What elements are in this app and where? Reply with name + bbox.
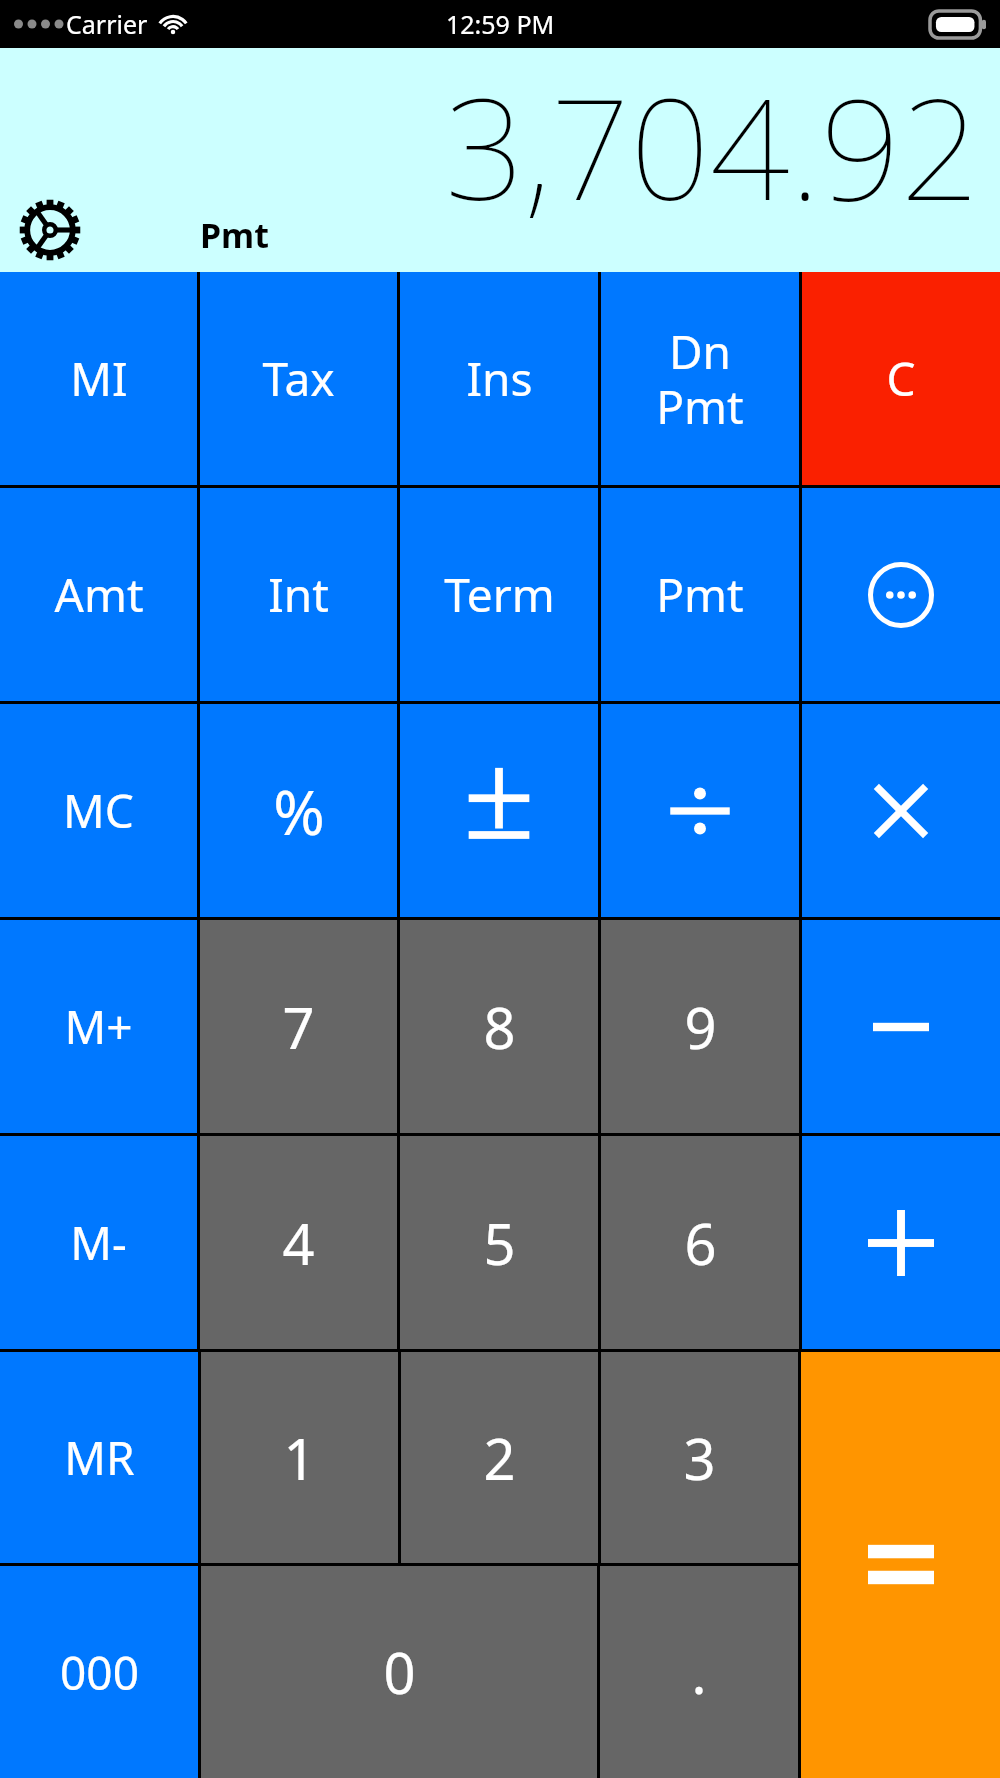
- button[interactable]: Divide: [601, 704, 799, 917]
- button[interactable]: Pmt: [601, 488, 799, 701]
- staticText: Tax: [262, 347, 335, 410]
- button[interactable]: 8: [400, 920, 598, 1133]
- staticText: Pmt: [656, 563, 744, 626]
- button[interactable]: Ins: [400, 272, 598, 485]
- button[interactable]: M-: [0, 1136, 197, 1349]
- button[interactable]: Int: [200, 488, 397, 701]
- staticText: 5: [483, 1205, 516, 1281]
- button[interactable]: C: [802, 272, 1000, 485]
- button[interactable]: 7: [200, 920, 397, 1133]
- button[interactable]: Term: [400, 488, 598, 701]
- staticText: 2: [483, 1420, 516, 1496]
- staticText: Carrier: [66, 7, 148, 41]
- staticText: Int: [268, 563, 329, 626]
- button[interactable]: More: [802, 488, 1000, 701]
- staticText: Dn Pmt: [656, 320, 744, 437]
- button[interactable]: Equals: [801, 1352, 1000, 1778]
- button[interactable]: Amt: [0, 488, 197, 701]
- button[interactable]: 1: [201, 1352, 398, 1563]
- button[interactable]: Plus: [802, 1136, 1000, 1349]
- staticText: 9: [684, 989, 717, 1065]
- staticText: C: [886, 347, 916, 410]
- button[interactable]: 2: [401, 1352, 598, 1563]
- staticText: MR: [64, 1426, 135, 1489]
- button[interactable]: Multiply: [802, 704, 1000, 917]
- staticText: %: [273, 769, 325, 853]
- button[interactable]: 9: [601, 920, 799, 1133]
- button[interactable]: Minus: [802, 920, 1000, 1133]
- button[interactable]: 6: [601, 1136, 799, 1349]
- button[interactable]: Tax: [200, 272, 397, 485]
- button[interactable]: %: [200, 704, 397, 917]
- staticText: .: [691, 1634, 707, 1710]
- staticText: 7: [282, 989, 315, 1065]
- staticText: 4: [282, 1205, 315, 1281]
- staticText: M+: [64, 995, 133, 1058]
- button[interactable]: .: [600, 1566, 798, 1778]
- button[interactable]: MR: [0, 1352, 198, 1563]
- button[interactable]: MI: [0, 272, 197, 485]
- button[interactable]: M+: [0, 920, 197, 1133]
- staticText: 3,704.92: [444, 50, 980, 241]
- staticText: 0: [383, 1634, 416, 1710]
- button[interactable]: 5: [400, 1136, 598, 1349]
- staticText: 000: [60, 1641, 139, 1704]
- staticText: 12:59 PM: [446, 7, 555, 41]
- staticText: 3: [683, 1420, 716, 1496]
- staticText: MC: [63, 779, 134, 842]
- staticText: Amt: [54, 563, 144, 626]
- staticText: Ins: [466, 347, 533, 410]
- staticText: MI: [70, 347, 128, 410]
- staticText: 1: [283, 1420, 316, 1496]
- staticText: 6: [684, 1205, 717, 1281]
- staticText: Pmt: [200, 212, 270, 258]
- staticText: Term: [444, 563, 555, 626]
- staticText: M-: [70, 1211, 127, 1274]
- button[interactable]: Settings: [16, 196, 84, 264]
- button[interactable]: Dn Pmt: [601, 272, 799, 485]
- button[interactable]: 3: [601, 1352, 798, 1563]
- button[interactable]: 4: [200, 1136, 397, 1349]
- button[interactable]: 0: [201, 1566, 597, 1778]
- button[interactable]: Plus minus: [400, 704, 598, 917]
- button[interactable]: MC: [0, 704, 197, 917]
- button[interactable]: 000: [0, 1566, 198, 1778]
- staticText: 8: [483, 989, 516, 1065]
